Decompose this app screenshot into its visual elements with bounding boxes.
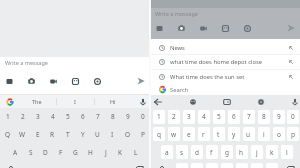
button[interactable]: w	[166, 125, 181, 143]
button[interactable]: m	[264, 161, 279, 168]
button[interactable]: x	[189, 161, 204, 168]
button[interactable]	[199, 24, 208, 33]
button[interactable]: 5	[60, 108, 75, 125]
button[interactable]: what time does home depot close	[151, 54, 300, 69]
button[interactable]: 9	[271, 108, 286, 125]
button[interactable]	[177, 24, 186, 33]
button[interactable]: T	[60, 125, 75, 143]
button[interactable]: 2	[166, 108, 181, 125]
button[interactable]: a	[159, 143, 174, 161]
button[interactable]: 3	[181, 108, 196, 125]
button[interactable]: n	[249, 161, 264, 168]
button[interactable]: e	[181, 125, 196, 143]
button[interactable]: g	[219, 143, 234, 161]
button[interactable]	[223, 98, 231, 106]
button[interactable]	[155, 24, 164, 33]
button[interactable]: J	[98, 143, 113, 161]
button[interactable]: 9	[120, 108, 135, 125]
button[interactable]: c	[204, 161, 219, 168]
button[interactable]	[291, 98, 299, 106]
button[interactable]	[154, 98, 162, 106]
button[interactable]: j	[249, 143, 264, 161]
button[interactable]: H	[83, 143, 98, 161]
button[interactable]: 5	[211, 108, 226, 125]
button[interactable]	[2, 161, 20, 168]
button[interactable]: L	[128, 143, 143, 161]
button[interactable]: 1	[151, 108, 166, 125]
button[interactable]: What time does the sun set	[151, 69, 300, 84]
button[interactable]: P	[135, 125, 150, 143]
button[interactable]	[6, 98, 14, 106]
button[interactable]: 4	[45, 108, 60, 125]
button[interactable]: I	[105, 125, 120, 143]
button[interactable]	[93, 77, 102, 86]
button[interactable]: G	[68, 143, 83, 161]
button[interactable]: R	[45, 125, 60, 143]
button[interactable]: K	[113, 143, 128, 161]
button[interactable]	[27, 77, 36, 86]
button[interactable]	[0, 57, 150, 94]
button[interactable]: 6	[226, 108, 241, 125]
button[interactable]: h	[234, 143, 249, 161]
button[interactable]	[71, 77, 80, 86]
button[interactable]: 0	[286, 108, 300, 125]
button[interactable]	[130, 161, 148, 168]
button[interactable]: 2	[15, 108, 30, 125]
button[interactable]: D	[38, 143, 53, 161]
button[interactable]: 8	[105, 108, 120, 125]
button[interactable]: I	[56, 94, 94, 108]
button[interactable]	[286, 23, 296, 33]
button[interactable]	[281, 161, 299, 168]
button[interactable]: i	[256, 125, 271, 143]
button[interactable]: l	[279, 143, 294, 161]
button[interactable]: d	[189, 143, 204, 161]
button[interactable]: f	[204, 143, 219, 161]
button[interactable]	[49, 77, 58, 86]
button[interactable]	[139, 98, 147, 106]
button[interactable]: s	[174, 143, 189, 161]
button[interactable]: O	[120, 125, 135, 143]
button[interactable]: 8	[256, 108, 271, 125]
button[interactable]: 7	[241, 108, 256, 125]
button[interactable]: b	[234, 161, 249, 168]
button[interactable]	[243, 24, 252, 33]
button[interactable]: r	[196, 125, 211, 143]
button[interactable]	[221, 24, 230, 33]
button[interactable]: 1	[0, 108, 15, 125]
button[interactable]	[189, 98, 197, 106]
button[interactable]: 0	[135, 108, 150, 125]
button[interactable]: W	[15, 125, 30, 143]
button[interactable]: v	[219, 161, 234, 168]
button[interactable]: 3	[30, 108, 45, 125]
button[interactable]: t	[211, 125, 226, 143]
button[interactable]: 6	[75, 108, 90, 125]
button[interactable]: Search	[151, 83, 300, 95]
button[interactable]: The	[18, 94, 56, 108]
button[interactable]: S	[23, 143, 38, 161]
button[interactable]: k	[264, 143, 279, 161]
button[interactable]: E	[30, 125, 45, 143]
button[interactable]	[136, 76, 146, 86]
button[interactable]: 4	[196, 108, 211, 125]
button[interactable]: A	[8, 143, 23, 161]
button[interactable]: q	[151, 125, 166, 143]
button[interactable]	[5, 77, 14, 86]
button[interactable]: News	[151, 40, 300, 55]
button[interactable]: y	[226, 125, 241, 143]
button[interactable]: Y	[75, 125, 90, 143]
button[interactable]: 7	[90, 108, 105, 125]
button[interactable]	[257, 98, 265, 106]
button[interactable]	[153, 161, 171, 168]
button[interactable]: F	[53, 143, 68, 161]
button[interactable]: Q	[0, 125, 15, 143]
button[interactable]: Hi	[94, 94, 132, 108]
button[interactable]: o	[271, 125, 286, 143]
button[interactable]: U	[90, 125, 105, 143]
